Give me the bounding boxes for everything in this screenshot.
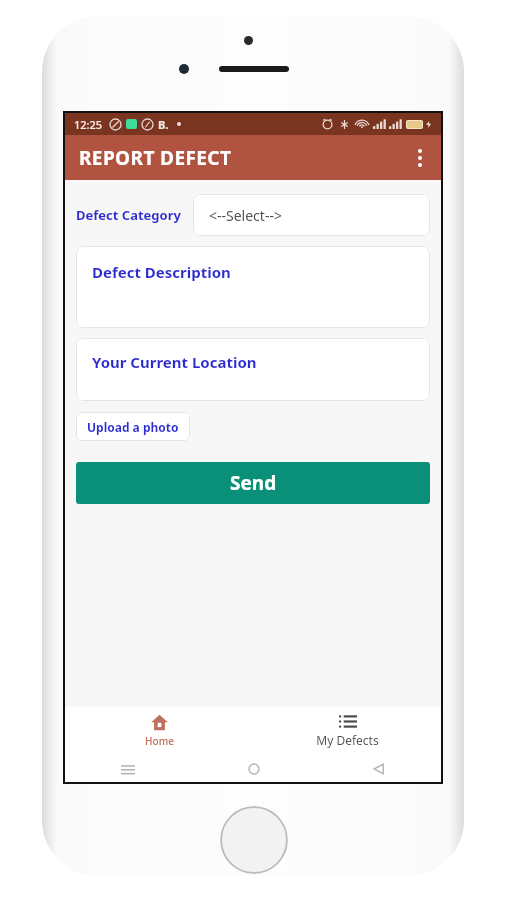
staticText: 12:25: [74, 117, 103, 132]
button[interactable]: Your Current Location: [76, 338, 430, 401]
button[interactable]: My Defects: [253, 707, 441, 755]
staticText: Home: [145, 734, 174, 748]
button[interactable]: Back: [316, 755, 441, 782]
button[interactable]: More options: [399, 137, 441, 179]
button[interactable]: Upload a photo: [76, 412, 190, 441]
staticText: Your Current Location: [92, 352, 257, 372]
staticText: Defect Category: [76, 206, 181, 224]
button[interactable]: Recents: [65, 755, 191, 782]
staticText: Upload a photo: [87, 419, 179, 435]
button[interactable]: Home: [65, 707, 253, 755]
staticText: B.: [158, 117, 169, 132]
staticText: Defect Description: [92, 262, 231, 282]
button[interactable]: Defect Description: [76, 246, 430, 328]
button[interactable]: Send: [76, 462, 430, 504]
staticText: <--Select-->: [209, 206, 282, 225]
button[interactable]: Home: [191, 755, 316, 782]
staticText: My Defects: [316, 732, 379, 748]
button[interactable]: <--Select-->: [193, 194, 430, 236]
staticText: REPORT DEFECT: [79, 145, 232, 171]
staticText: Send: [230, 470, 277, 496]
